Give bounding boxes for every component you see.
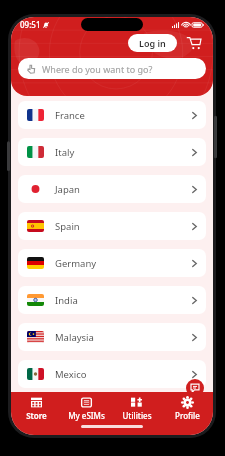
staticText: 09:51 (20, 19, 41, 30)
staticText: Germany (55, 257, 97, 270)
button[interactable]: Profile (162, 392, 213, 425)
button[interactable]: Chat support (186, 379, 204, 397)
button[interactable]: Mexico (18, 360, 206, 388)
staticText: Spain (55, 220, 80, 233)
button[interactable]: Log in (128, 34, 177, 52)
button[interactable]: Where do you want to go? (18, 58, 206, 79)
button[interactable]: Japan (18, 175, 206, 203)
staticText: Mexico (55, 368, 87, 381)
staticText: Malaysia (55, 331, 94, 344)
staticText: Log in (139, 37, 166, 49)
button[interactable]: Spain (18, 212, 206, 240)
staticText: Where do you want to go? (42, 63, 153, 75)
button[interactable]: Germany (18, 249, 206, 277)
staticText: Utilities (122, 410, 152, 421)
staticText: Profile (175, 410, 200, 421)
button[interactable]: Italy (18, 138, 206, 166)
button[interactable]: My eSIMs (61, 392, 111, 425)
button[interactable]: Cart (184, 33, 204, 53)
staticText: Japan (55, 183, 80, 196)
button[interactable]: Utilities (111, 392, 162, 425)
button[interactable]: France (18, 101, 206, 129)
button[interactable]: India (18, 286, 206, 314)
staticText: Store (26, 410, 47, 421)
staticText: France (55, 109, 85, 122)
button[interactable]: Malaysia (18, 323, 206, 351)
button[interactable]: Store (11, 392, 61, 425)
staticText: India (55, 294, 78, 307)
staticText: Italy (55, 146, 75, 159)
staticText: My eSIMs (68, 410, 105, 421)
